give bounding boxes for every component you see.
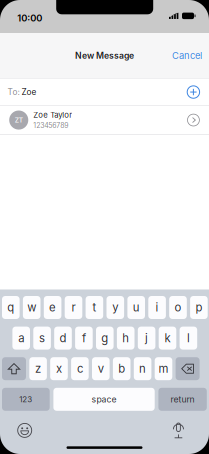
staticText: y <box>112 301 118 314</box>
staticText: To: <box>7 87 19 97</box>
staticText: Zoe Taylor <box>33 110 72 120</box>
button[interactable]: t <box>86 296 103 319</box>
button[interactable]: d <box>54 327 72 350</box>
staticText: n <box>139 362 146 375</box>
staticText: g <box>101 331 108 345</box>
button[interactable]: a <box>12 327 30 350</box>
staticText: h <box>122 331 129 345</box>
button[interactable]: s <box>33 327 51 350</box>
staticText: s <box>39 331 45 345</box>
button[interactable]: f <box>75 327 93 350</box>
staticText: q <box>7 301 14 314</box>
staticText: m <box>158 362 168 375</box>
button[interactable]: n <box>134 357 151 380</box>
staticText: v <box>98 362 104 375</box>
button[interactable] <box>2 357 26 380</box>
staticText: 10:00 <box>17 12 42 24</box>
staticText: z <box>35 362 41 375</box>
staticText: 123 <box>19 394 32 404</box>
button[interactable]: u <box>127 296 145 319</box>
button[interactable]: return <box>158 388 207 411</box>
button[interactable] <box>176 357 200 380</box>
button[interactable]: l <box>180 327 197 350</box>
staticText: Cancel <box>172 50 202 61</box>
staticText: space <box>92 394 117 405</box>
staticText: 123456789 <box>33 121 68 130</box>
staticText: return <box>171 394 195 405</box>
button[interactable]: space <box>53 388 155 411</box>
button[interactable]: z <box>29 357 47 380</box>
staticText: t <box>92 301 96 314</box>
staticText: Zoe <box>19 87 36 97</box>
button[interactable]: e <box>44 296 61 319</box>
button[interactable]: h <box>117 327 134 350</box>
staticText: c <box>77 362 83 375</box>
button[interactable]: Dictation <box>170 420 186 441</box>
button[interactable]: v <box>92 357 110 380</box>
button[interactable]: x <box>50 357 68 380</box>
button[interactable]: q <box>2 296 20 319</box>
staticText: i <box>156 301 159 314</box>
staticText: l <box>187 331 190 345</box>
button[interactable]: i <box>148 296 166 319</box>
button[interactable]: g <box>96 327 114 350</box>
staticText: New Message <box>75 50 134 61</box>
staticText: d <box>59 331 66 345</box>
button[interactable]: b <box>113 357 130 380</box>
staticText: r <box>71 301 75 314</box>
staticText: f <box>82 331 86 345</box>
button[interactable]: p <box>190 296 208 319</box>
button[interactable]: Emoji keyboard <box>15 420 35 440</box>
staticText: w <box>27 301 36 314</box>
button[interactable]: y <box>106 296 124 319</box>
button[interactable]: c <box>71 357 89 380</box>
staticText: u <box>133 301 140 314</box>
button[interactable]: m <box>155 357 172 380</box>
staticText: a <box>18 331 24 345</box>
staticText: j <box>145 331 148 345</box>
staticText: ZT <box>15 116 23 124</box>
staticText: e <box>49 301 56 314</box>
button[interactable]: 123 <box>2 388 50 411</box>
button[interactable]: k <box>159 327 176 350</box>
staticText: p <box>195 301 202 314</box>
staticText: x <box>56 362 62 375</box>
button[interactable]: Cancel <box>165 33 209 78</box>
staticText: k <box>164 331 170 345</box>
button[interactable]: o <box>169 296 187 319</box>
button[interactable]: Add contact <box>184 83 203 101</box>
button[interactable]: ZT <box>0 106 209 134</box>
staticText: o <box>174 301 181 314</box>
button[interactable]: j <box>138 327 155 350</box>
staticText: b <box>118 362 125 375</box>
button[interactable]: r <box>65 296 82 319</box>
button[interactable]: w <box>23 296 40 319</box>
